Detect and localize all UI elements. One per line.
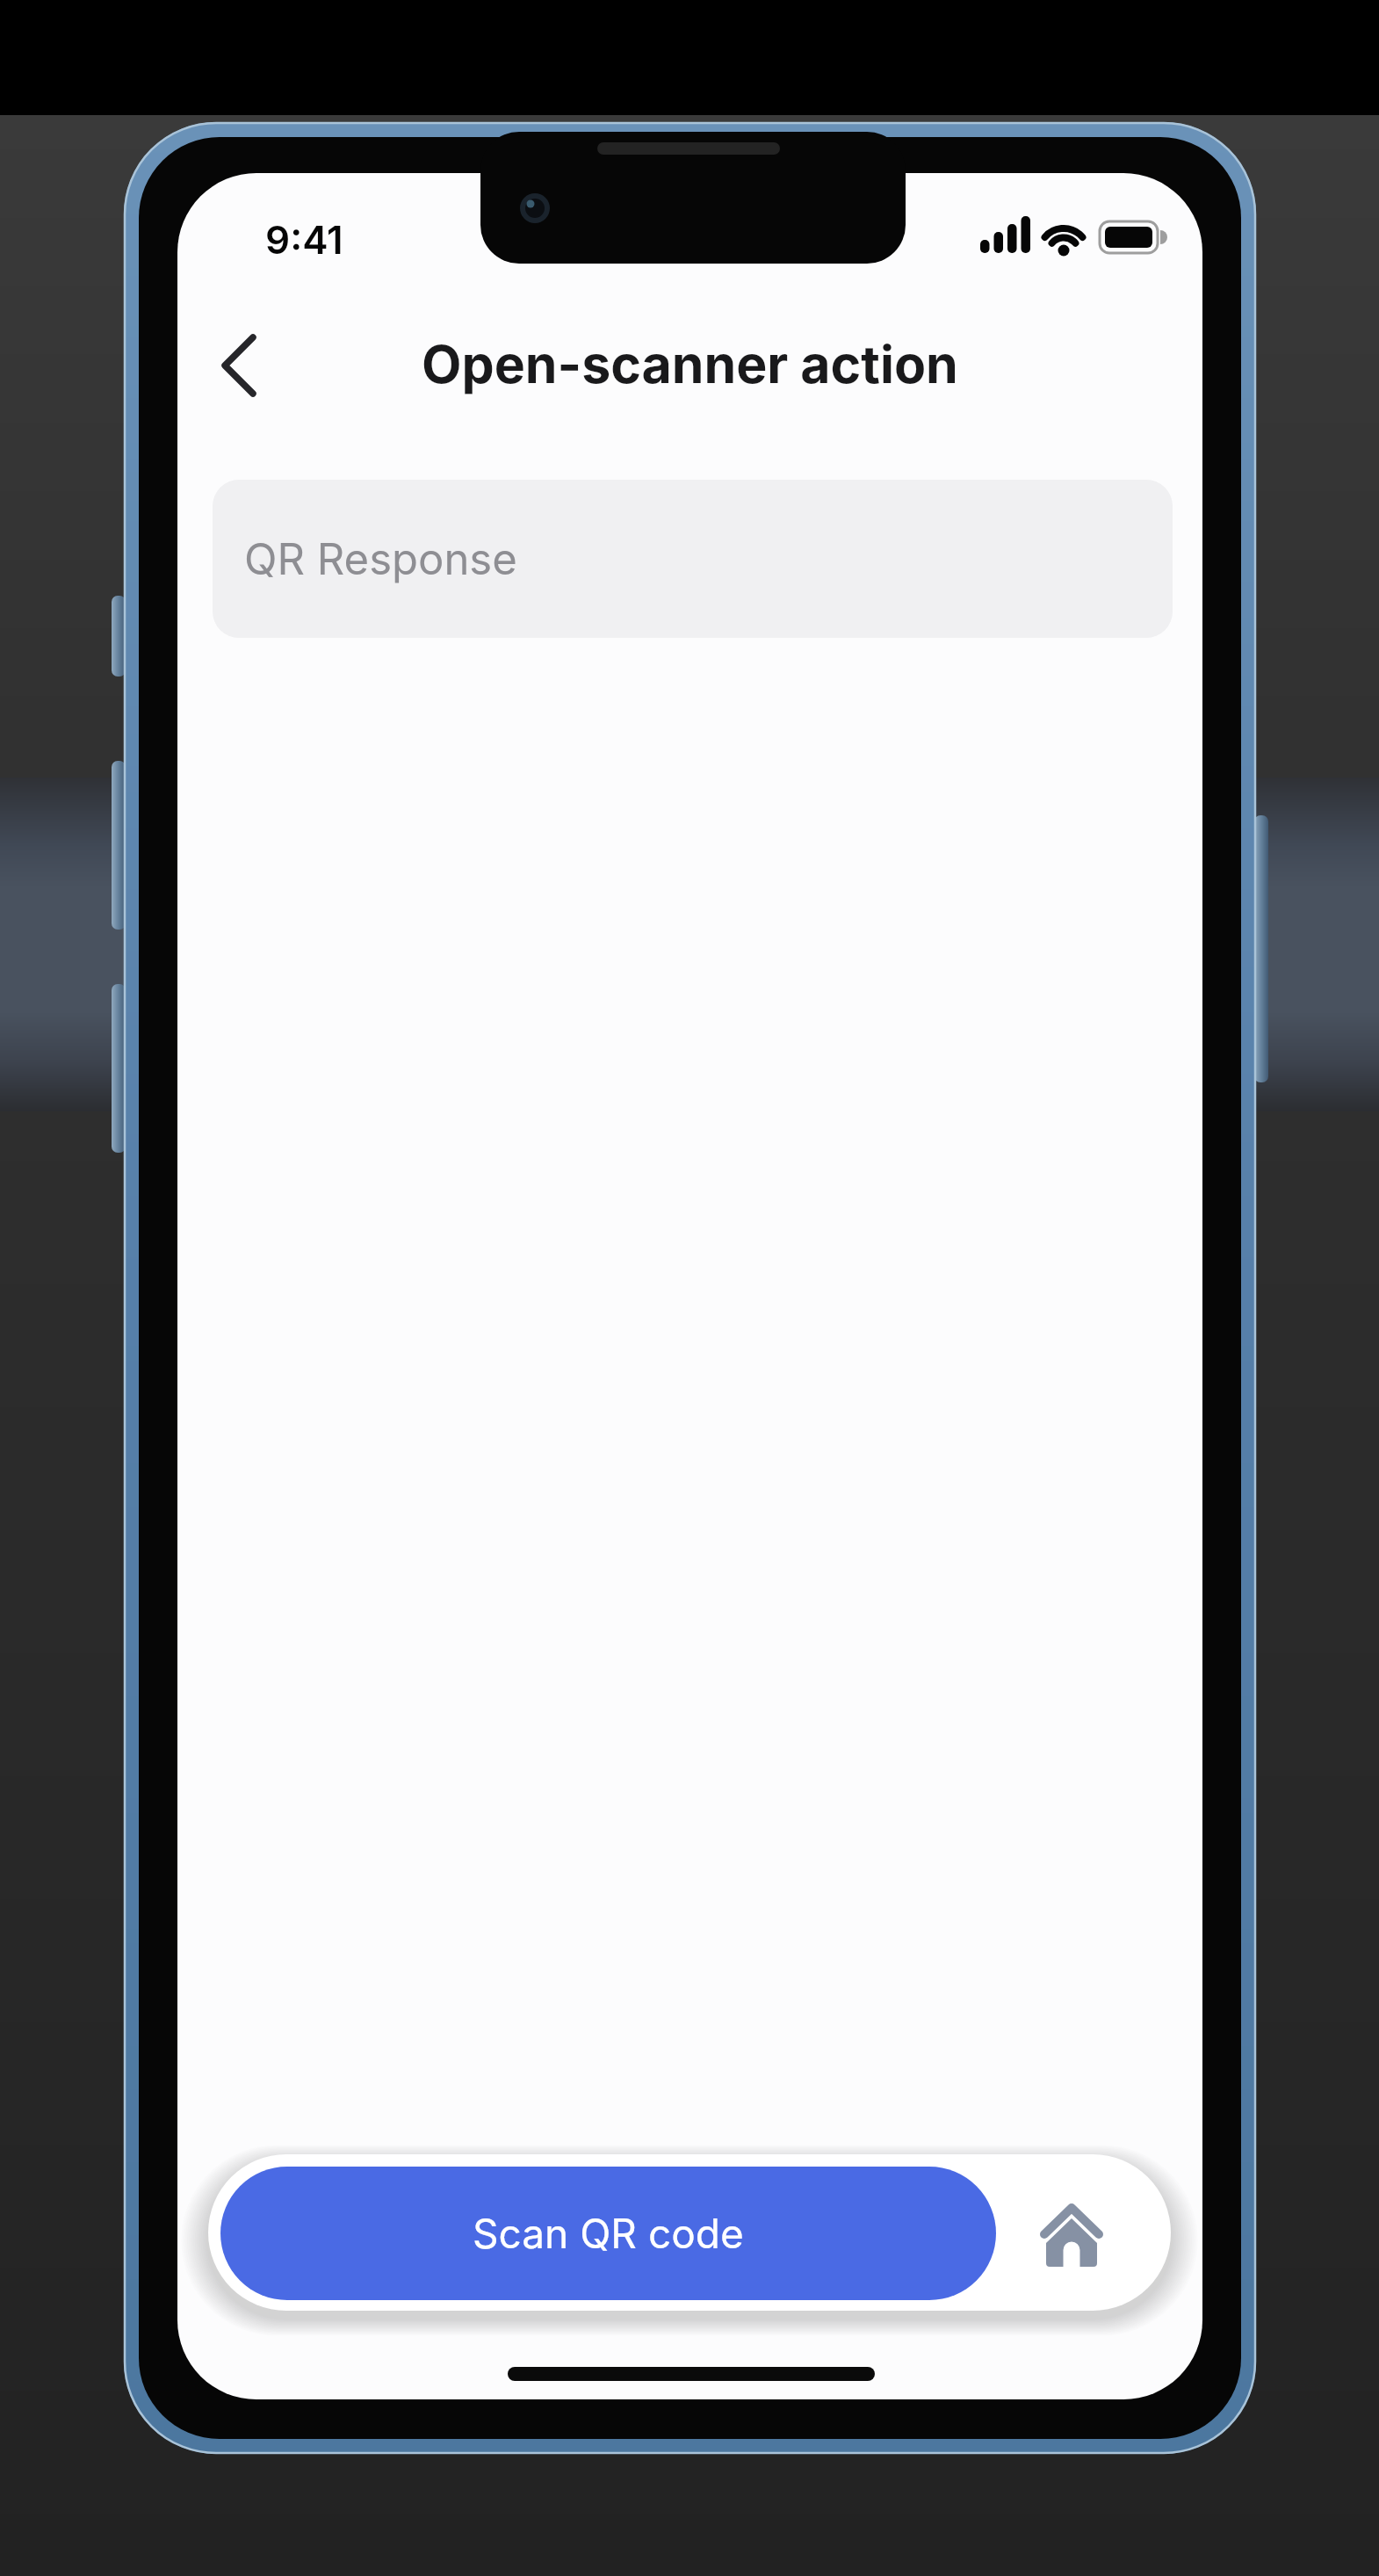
staticText: Open-scanner action (422, 333, 958, 395)
staticText: Scan QR code (473, 2209, 744, 2258)
button[interactable] (1032, 2196, 1113, 2277)
staticText: 9:41 (265, 216, 343, 262)
button[interactable]: Scan QR code (220, 2167, 996, 2300)
staticText: QR Response (244, 533, 517, 585)
button[interactable] (204, 327, 283, 406)
button[interactable]: QR Response (213, 480, 1173, 638)
